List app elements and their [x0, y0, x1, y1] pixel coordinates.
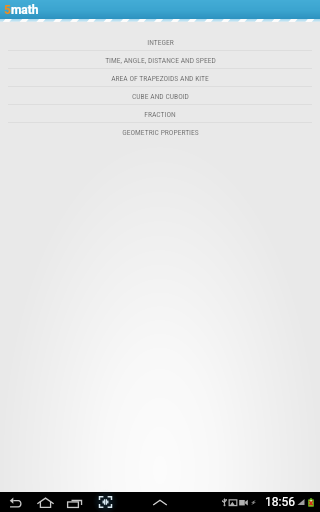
button[interactable]: GEOMETRIC PROPERTIES — [0, 123, 320, 141]
button[interactable]: INTEGER — [0, 33, 320, 51]
button[interactable]: Back — [9, 492, 22, 512]
staticText: FRACTION — [144, 110, 176, 119]
staticText: 5math — [4, 3, 39, 17]
button[interactable]: AREA OF TRAPEZOIDS AND KITE — [0, 69, 320, 87]
staticText: GEOMETRIC PROPERTIES — [122, 128, 199, 137]
button[interactable]: CUBE AND CUBOID — [0, 87, 320, 105]
button[interactable]: Home — [37, 492, 54, 512]
staticText: TIME, ANGLE, DISTANCE AND SPEED — [105, 56, 216, 65]
button[interactable]: TIME, ANGLE, DISTANCE AND SPEED — [0, 51, 320, 69]
staticText: AREA OF TRAPEZOIDS AND KITE — [111, 74, 209, 83]
staticText: INTEGER — [147, 38, 174, 47]
staticText: CUBE AND CUBOID — [132, 92, 189, 101]
staticText: 18:56 — [265, 495, 295, 509]
button[interactable]: Screenshot — [98, 492, 113, 512]
button[interactable]: Show navigation bar — [152, 496, 168, 509]
button[interactable]: Recent apps — [67, 492, 82, 512]
button[interactable]: FRACTION — [0, 105, 320, 123]
